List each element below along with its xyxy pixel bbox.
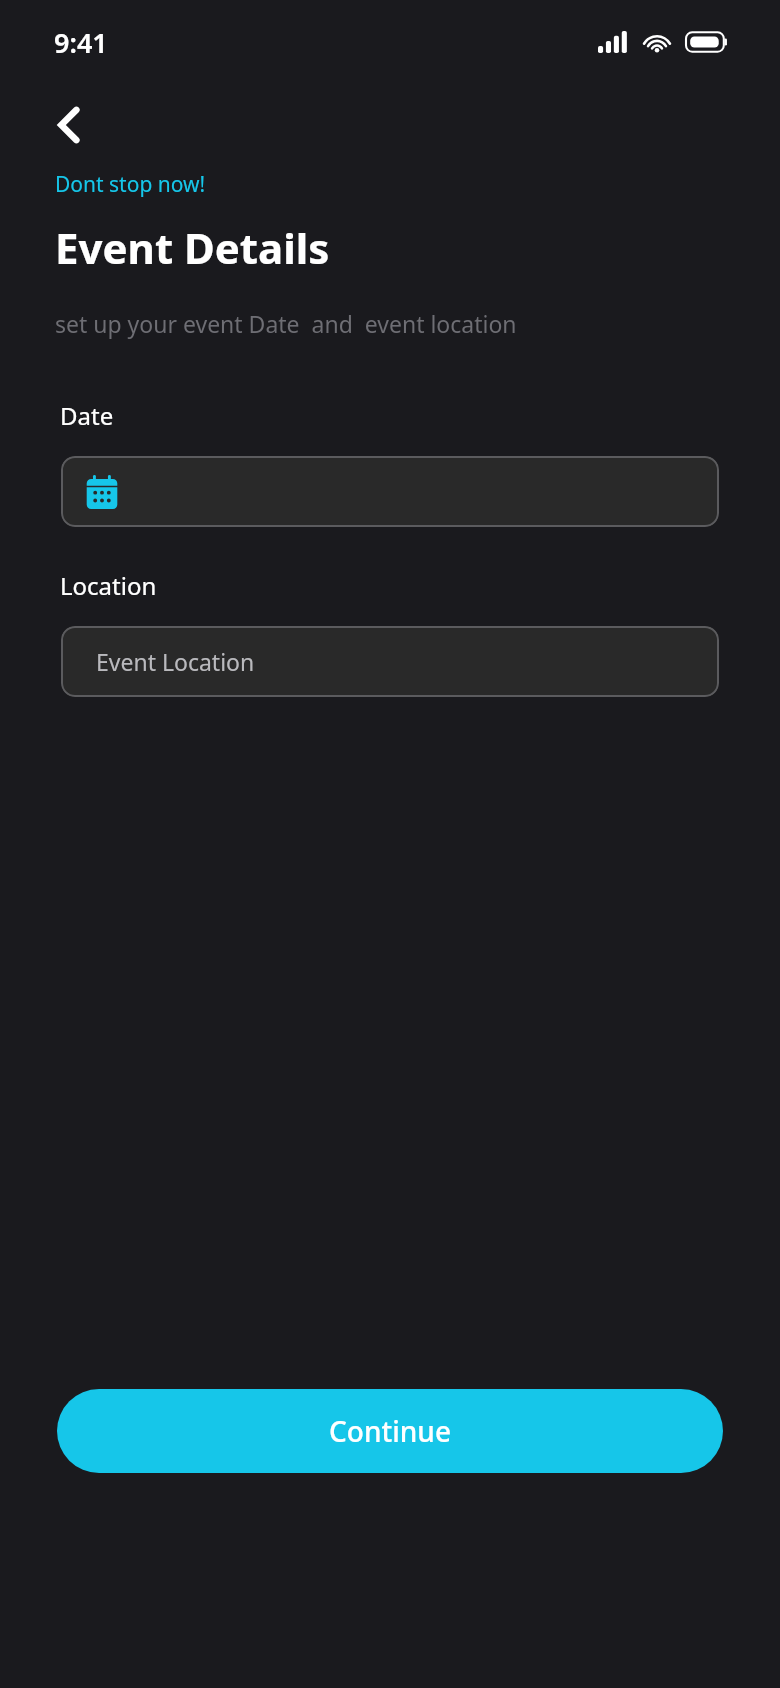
staticText: Date: [60, 399, 114, 432]
button[interactable]: Event Location: [61, 626, 719, 697]
staticText: Location: [60, 569, 157, 602]
button[interactable]: Pick date: [61, 456, 719, 527]
staticText: Event Location: [96, 646, 255, 677]
button[interactable]: Continue: [57, 1389, 723, 1473]
staticText: Dont stop now!: [55, 170, 206, 199]
staticText: set up your event Date and event locatio…: [55, 308, 517, 339]
staticText: Event Details: [55, 219, 330, 276]
staticText: Continue: [329, 1412, 451, 1450]
button[interactable]: Back: [44, 98, 98, 152]
staticText: 9:41: [54, 24, 108, 61]
